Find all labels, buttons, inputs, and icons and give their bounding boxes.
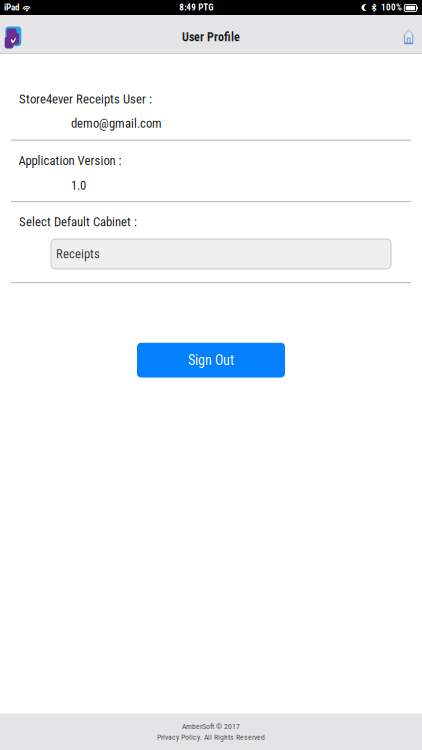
staticText: Privacy Policy. All Rights Reserved bbox=[157, 732, 265, 742]
staticText: iPad bbox=[4, 2, 19, 13]
staticText: Select Default Cabinet : bbox=[19, 214, 137, 229]
button[interactable]: Store4ever bbox=[0, 18, 28, 50]
staticText: demo@gmail.com bbox=[71, 116, 162, 131]
button[interactable]: Sign Out bbox=[137, 343, 285, 377]
staticText: 100% bbox=[381, 2, 402, 13]
staticText: 1.0 bbox=[71, 178, 86, 193]
button[interactable]: Receipts bbox=[51, 239, 391, 269]
staticText: 8:49 PTG bbox=[179, 2, 213, 13]
button[interactable]: Home bbox=[393, 15, 422, 54]
staticText: Store4ever Receipts User : bbox=[19, 92, 152, 107]
staticText: Sign Out bbox=[188, 352, 234, 368]
staticText: User Profile bbox=[182, 30, 240, 44]
staticText: Receipts bbox=[56, 246, 100, 261]
staticText: AmberSoft © 2017 bbox=[182, 722, 240, 731]
staticText: Application Version : bbox=[18, 153, 121, 168]
